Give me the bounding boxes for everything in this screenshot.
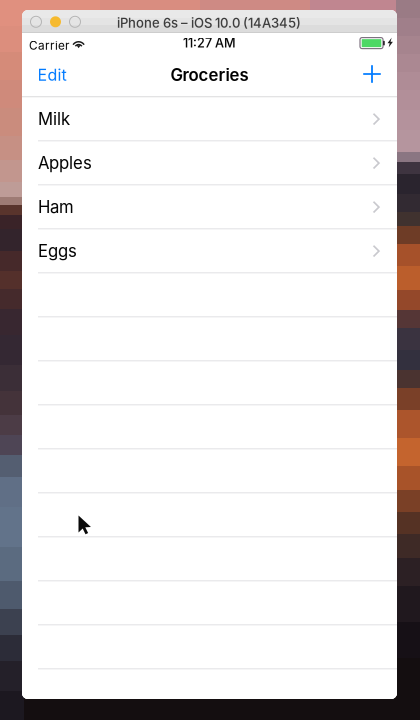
button[interactable]: Eggs [22, 229, 397, 273]
button[interactable]: Add item [350, 52, 394, 96]
staticText: Groceries [170, 65, 248, 85]
button[interactable] [22, 317, 397, 361]
button[interactable] [22, 449, 397, 493]
button[interactable]: Edit [22, 53, 83, 97]
button[interactable] [22, 405, 397, 449]
button[interactable] [22, 581, 397, 625]
button[interactable] [22, 273, 397, 317]
staticText: 11:27 AM [183, 35, 236, 51]
staticText: Eggs [38, 241, 77, 261]
staticText: Ham [38, 197, 74, 217]
staticText: Apples [38, 153, 92, 173]
staticText: iPhone 6s – iOS 10.0 (14A345) [117, 15, 301, 31]
button[interactable]: Apples [22, 141, 397, 185]
staticText: Edit [37, 65, 66, 85]
button[interactable] [22, 537, 397, 581]
button[interactable] [22, 493, 397, 537]
staticText: Carrier [29, 38, 69, 53]
button[interactable] [22, 625, 397, 669]
staticText: Milk [38, 109, 70, 129]
button[interactable] [22, 669, 397, 713]
button[interactable]: Milk [22, 97, 397, 141]
button[interactable]: Ham [22, 185, 397, 229]
button[interactable] [22, 361, 397, 405]
